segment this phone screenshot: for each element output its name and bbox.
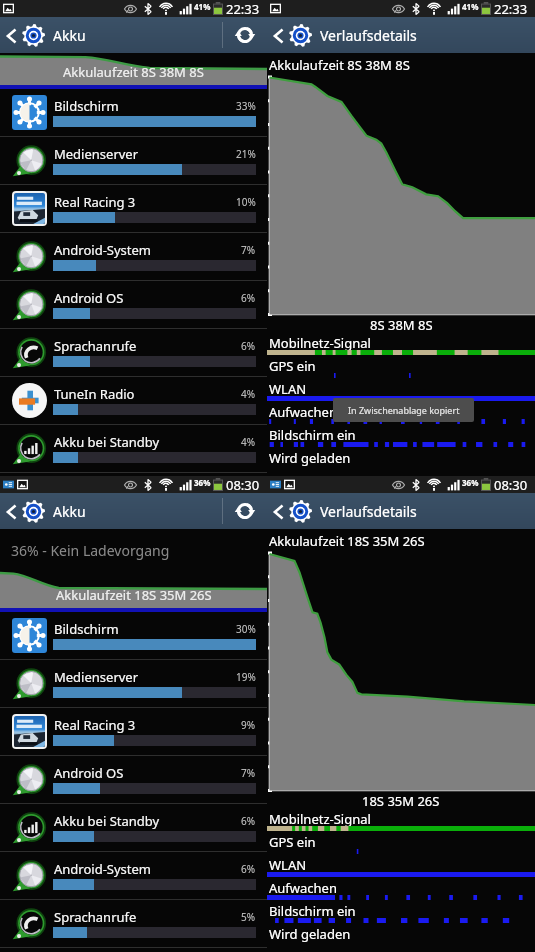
button[interactable]: Refresh: [231, 21, 259, 49]
button[interactable]: Android-System: [0, 852, 267, 900]
staticText: 30%: [236, 622, 256, 636]
staticText: Bildschirm: [54, 97, 119, 115]
staticText: 7%: [241, 766, 256, 780]
staticText: 6%: [241, 862, 256, 876]
button[interactable]: Sprachanrufe: [0, 329, 267, 377]
staticText: Sprachanrufe: [54, 337, 137, 355]
button[interactable]: Medienserver: [0, 137, 267, 185]
staticText: 41%: [194, 1, 211, 12]
staticText: Real Racing 3: [54, 716, 136, 734]
staticText: 36%: [462, 477, 479, 488]
button[interactable]: Back: [0, 495, 51, 528]
staticText: WLAN: [269, 380, 307, 398]
staticText: Android OS: [54, 289, 124, 307]
staticText: 9%: [241, 718, 256, 732]
staticText: Medienserver: [54, 145, 139, 163]
button[interactable]: Sprachanrufe: [0, 900, 267, 948]
staticText: 10%: [236, 195, 256, 209]
staticText: 5%: [241, 910, 256, 924]
staticText: 08:30: [494, 476, 528, 493]
staticText: Android OS: [54, 764, 124, 782]
staticText: Akku: [53, 502, 86, 521]
staticText: 6%: [241, 339, 256, 353]
button[interactable]: Android-System: [0, 233, 267, 281]
staticText: Android-System: [54, 241, 152, 259]
button[interactable]: Medienserver: [0, 660, 267, 708]
staticText: Verlaufsdetails: [320, 26, 417, 45]
staticText: Mobilnetz-Signal: [269, 334, 371, 352]
button[interactable]: Bildschirm: [0, 89, 267, 137]
staticText: Sprachanrufe: [54, 908, 137, 926]
staticText: GPS ein: [269, 357, 316, 375]
staticText: 22:33: [226, 0, 260, 17]
staticText: Bildschirm ein: [269, 426, 356, 444]
staticText: Akkulaufzeit 8S 38M 8S: [269, 56, 410, 74]
staticText: GPS ein: [269, 833, 316, 851]
staticText: 4%: [241, 435, 256, 449]
staticText: 33%: [236, 99, 256, 113]
staticText: TuneIn Radio: [54, 385, 135, 403]
staticText: 6%: [241, 814, 256, 828]
other: Back: [7, 28, 16, 44]
staticText: 8S 38M 8S: [370, 316, 433, 333]
button[interactable]: Back: [267, 495, 318, 528]
staticText: Verlaufsdetails: [320, 502, 417, 521]
staticText: 6%: [241, 291, 256, 305]
staticText: 21%: [236, 147, 256, 161]
staticText: Akkulaufzeit 8S 38M 8S: [63, 63, 204, 81]
staticText: Bildschirm: [54, 620, 119, 638]
staticText: 36% - Kein Ladevorgang: [11, 541, 170, 560]
staticText: Bildschirm ein: [269, 902, 356, 920]
staticText: 22:33: [494, 0, 528, 17]
staticText: 19%: [236, 670, 256, 684]
button[interactable]: Real Racing 3: [0, 708, 267, 756]
button[interactable]: Real Racing 3: [0, 185, 267, 233]
button[interactable]: Bildschirm: [0, 612, 267, 660]
button[interactable]: Akku bei Standby: [0, 804, 267, 852]
staticText: Akkulaufzeit 18S 35M 26S: [269, 532, 425, 550]
button[interactable]: Akku bei Standby: [0, 425, 267, 473]
other: Back: [274, 504, 283, 520]
staticText: 36%: [194, 477, 211, 488]
staticText: 18S 35M 26S: [362, 792, 440, 809]
button[interactable]: Android OS: [0, 756, 267, 804]
staticText: Wird geladen: [269, 449, 351, 467]
staticText: Android-System: [54, 860, 152, 878]
button[interactable]: Android OS: [0, 281, 267, 329]
staticText: Akku bei Standby: [54, 433, 160, 451]
staticText: Akkulaufzeit 18S 35M 26S: [56, 586, 212, 604]
staticText: Aufwachen: [269, 879, 337, 897]
other: Back: [7, 504, 16, 520]
staticText: 41%: [462, 1, 479, 12]
other: Back: [274, 28, 283, 44]
staticText: Wird geladen: [269, 925, 351, 943]
button[interactable]: Back: [0, 19, 51, 52]
staticText: Akku bei Standby: [54, 812, 160, 830]
staticText: Real Racing 3: [54, 193, 136, 211]
staticText: WLAN: [269, 856, 307, 874]
staticText: Medienserver: [54, 668, 139, 686]
staticText: Akku: [53, 26, 86, 45]
staticText: 4%: [241, 387, 256, 401]
staticText: 08:30: [226, 476, 260, 493]
button[interactable]: Back: [267, 19, 318, 52]
staticText: Aufwachen: [269, 403, 337, 421]
button[interactable]: TuneIn Radio: [0, 377, 267, 425]
staticText: In Zwischenablage kopiert: [348, 404, 460, 416]
staticText: 7%: [241, 243, 256, 257]
staticText: Mobilnetz-Signal: [269, 810, 371, 828]
button[interactable]: Refresh: [231, 497, 259, 525]
